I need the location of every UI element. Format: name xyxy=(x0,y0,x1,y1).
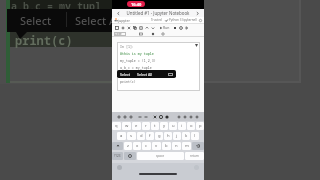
button[interactable]: Keyboard xyxy=(138,31,144,36)
button[interactable]: Backspace xyxy=(192,142,204,150)
button[interactable]: Back xyxy=(116,11,121,16)
button[interactable]: fmt1 xyxy=(122,114,128,120)
button[interactable]: ind0 xyxy=(137,114,143,120)
staticText: 16:40 xyxy=(131,2,142,7)
staticText: Code xyxy=(114,32,122,36)
button[interactable]: x xyxy=(133,142,141,150)
button[interactable]: ind1 xyxy=(143,114,149,120)
button[interactable]: h xyxy=(164,132,172,140)
staticText: Select A xyxy=(75,13,117,28)
button[interactable]: fmt0 xyxy=(116,114,122,120)
button[interactable]: Emoji xyxy=(124,152,136,160)
button[interactable]: e xyxy=(132,122,141,130)
button[interactable]: l xyxy=(191,132,199,140)
staticText: q xyxy=(115,123,118,129)
button[interactable]: Cut xyxy=(152,114,158,120)
staticText: f xyxy=(149,133,151,139)
button[interactable]: Back xyxy=(112,9,204,17)
button[interactable]: nav2 xyxy=(188,114,194,120)
staticText: Trusted xyxy=(151,18,162,22)
button[interactable]: Restart xyxy=(178,25,184,31)
staticText: r xyxy=(145,123,147,129)
button[interactable]: Code xyxy=(114,32,126,36)
staticText: y xyxy=(163,123,166,129)
button[interactable]: nav1 xyxy=(182,114,188,120)
button[interactable]: nav3 xyxy=(194,114,200,120)
staticText: h xyxy=(167,133,170,139)
button[interactable]: Add xyxy=(120,25,126,31)
button[interactable]: t xyxy=(151,122,159,130)
staticText: a,b,c = my_tupl xyxy=(11,0,101,13)
button[interactable]: u xyxy=(169,122,177,130)
staticText: a,b,c = my_tuple xyxy=(120,65,152,69)
button[interactable]: MoveUp xyxy=(144,25,150,31)
button[interactable]: Save xyxy=(114,25,120,31)
button[interactable]: k xyxy=(182,132,190,140)
button[interactable]: Help xyxy=(160,31,166,36)
staticText: space xyxy=(156,154,165,158)
button[interactable]: Forward xyxy=(195,11,200,16)
button[interactable]: Paste xyxy=(138,25,144,31)
button[interactable]: a xyxy=(117,132,126,140)
button[interactable]: Command xyxy=(150,31,156,36)
button[interactable]: Shift xyxy=(112,142,123,150)
staticText: #this is my tuple xyxy=(120,51,154,55)
staticText: In [1]: xyxy=(120,44,134,48)
button[interactable]: i xyxy=(178,122,186,130)
button[interactable]: c xyxy=(142,142,151,150)
button[interactable]: fmt2 xyxy=(128,114,134,120)
button[interactable]: space xyxy=(137,152,184,160)
button[interactable]: Select xyxy=(120,72,130,77)
staticText: Select xyxy=(120,72,130,77)
button[interactable]: s xyxy=(127,132,136,140)
staticText: return xyxy=(190,154,199,158)
button[interactable]: More options xyxy=(168,73,173,76)
button[interactable]: g xyxy=(155,132,163,140)
button[interactable]: w xyxy=(122,122,131,130)
button[interactable]: MoveDown xyxy=(150,25,156,31)
button[interactable]: Copy xyxy=(132,25,138,31)
button[interactable]: q xyxy=(112,122,121,130)
button[interactable]: o xyxy=(187,122,195,130)
button[interactable]: v xyxy=(152,142,161,150)
staticText: w xyxy=(125,123,129,129)
staticText: u xyxy=(172,123,175,129)
button[interactable]: Assistant xyxy=(117,165,122,170)
button[interactable]: Copy xyxy=(158,114,164,120)
staticText: my_tuple = (1,2,3) xyxy=(120,58,156,62)
button[interactable]: n xyxy=(172,142,181,150)
staticText: e xyxy=(135,123,138,129)
button[interactable]: Stop xyxy=(172,25,178,31)
button[interactable]: p xyxy=(196,122,204,130)
staticText: Python 3 (ipykernel) xyxy=(169,18,197,22)
staticText: a xyxy=(120,133,123,139)
staticText: i xyxy=(181,123,183,129)
button[interactable]: j xyxy=(173,132,181,140)
staticText: g xyxy=(158,133,161,139)
staticText: x xyxy=(136,143,139,149)
button[interactable]: r xyxy=(142,122,150,130)
staticText: t xyxy=(154,123,156,129)
button[interactable]: d xyxy=(137,132,145,140)
staticText: Select xyxy=(20,13,52,28)
button[interactable]: m xyxy=(182,142,191,150)
button[interactable]: f xyxy=(146,132,154,140)
staticText: m xyxy=(185,143,189,149)
button[interactable]: y xyxy=(160,122,168,130)
staticText: s xyxy=(130,133,133,139)
button[interactable]: b xyxy=(162,142,171,150)
button[interactable]: z xyxy=(124,142,132,150)
button[interactable]: Cut xyxy=(126,25,132,31)
staticText: Run xyxy=(163,25,170,30)
button[interactable]: return xyxy=(185,152,204,160)
staticText: print(c) xyxy=(120,79,136,83)
button[interactable]: Paste xyxy=(164,114,170,120)
button[interactable]: Run xyxy=(159,25,170,30)
button[interactable]: Select All xyxy=(137,72,153,77)
staticText: j xyxy=(176,133,178,139)
button[interactable]: ?123 xyxy=(112,152,123,160)
button[interactable]: RunAll xyxy=(184,25,190,31)
button[interactable]: nav0 xyxy=(176,114,182,120)
staticText: jupyter xyxy=(118,18,130,23)
